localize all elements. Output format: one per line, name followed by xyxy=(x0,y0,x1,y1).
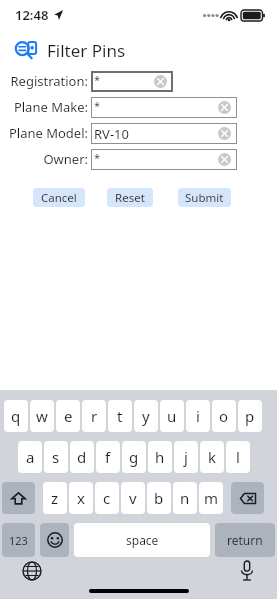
staticText: b xyxy=(154,488,164,508)
button[interactable]: q xyxy=(4,400,28,432)
staticText: v xyxy=(129,488,137,508)
staticText: RV-10 xyxy=(94,125,129,143)
button[interactable]: Clear text xyxy=(218,101,231,114)
staticText: Plane Make: xyxy=(0,98,88,116)
staticText: return xyxy=(227,532,263,548)
button[interactable]: Shift xyxy=(2,482,35,514)
button[interactable]: * xyxy=(91,71,173,92)
button[interactable]: Emoji xyxy=(40,523,69,557)
button[interactable]: o xyxy=(212,400,236,432)
button[interactable]: return xyxy=(215,523,275,557)
button[interactable]: s xyxy=(44,441,68,473)
staticText: j xyxy=(184,447,188,467)
staticText: t xyxy=(117,406,123,426)
button[interactable]: j xyxy=(174,441,198,473)
button[interactable]: b xyxy=(147,482,171,514)
staticText: h xyxy=(155,447,165,467)
staticText: space xyxy=(126,532,159,548)
button[interactable]: * xyxy=(91,149,237,170)
staticText: c xyxy=(103,488,111,508)
button[interactable]: d xyxy=(70,441,94,473)
staticText: d xyxy=(77,447,87,467)
staticText: i xyxy=(196,406,200,426)
staticText: q xyxy=(11,406,21,426)
button[interactable]: Dictate xyxy=(239,560,255,581)
staticText: a xyxy=(26,447,35,467)
staticText: * xyxy=(94,150,101,165)
button[interactable]: t xyxy=(108,400,132,432)
staticText: l xyxy=(236,447,240,467)
staticText: Cancel xyxy=(41,190,77,206)
button[interactable]: Clear text xyxy=(218,153,231,166)
staticText: z xyxy=(51,488,59,508)
staticText: y xyxy=(142,406,150,426)
staticText: Filter Pins xyxy=(47,39,126,62)
staticText: r xyxy=(91,406,98,426)
button[interactable]: y xyxy=(134,400,158,432)
button[interactable]: Submit xyxy=(178,188,231,207)
button[interactable]: c xyxy=(95,482,119,514)
staticText: p xyxy=(245,406,255,426)
button[interactable]: Cancel xyxy=(33,188,85,207)
staticText: Plane Model: xyxy=(0,124,88,142)
staticText: k xyxy=(208,447,217,467)
staticText: m xyxy=(204,488,219,508)
button[interactable]: g xyxy=(122,441,146,473)
staticText: * xyxy=(94,72,101,87)
button[interactable]: Change keyboard language xyxy=(22,561,42,581)
staticText: s xyxy=(52,447,60,467)
staticText: e xyxy=(64,406,73,426)
staticText: 123 xyxy=(9,533,28,548)
staticText: w xyxy=(36,406,48,426)
staticText: o xyxy=(219,406,229,426)
button[interactable]: Backspace xyxy=(231,482,264,514)
button[interactable]: u xyxy=(160,400,184,432)
staticText: f xyxy=(105,447,111,467)
staticText: x xyxy=(77,488,85,508)
button[interactable]: l xyxy=(226,441,250,473)
staticText: 12:48 xyxy=(15,6,49,24)
button[interactable]: x xyxy=(69,482,93,514)
button[interactable]: k xyxy=(200,441,224,473)
button[interactable]: m xyxy=(199,482,223,514)
staticText: u xyxy=(167,406,177,426)
button[interactable]: p xyxy=(238,400,262,432)
button[interactable]: w xyxy=(30,400,54,432)
button[interactable]: a xyxy=(18,441,42,473)
staticText: Owner: xyxy=(0,150,88,168)
button[interactable]: Clear text xyxy=(154,75,167,88)
staticText: Submit xyxy=(185,190,224,206)
button[interactable]: v xyxy=(121,482,145,514)
staticText: g xyxy=(129,447,139,467)
button[interactable]: 123 xyxy=(2,523,35,557)
button[interactable]: Reset xyxy=(107,188,153,207)
button[interactable]: r xyxy=(82,400,106,432)
button[interactable]: e xyxy=(56,400,80,432)
button[interactable]: f xyxy=(96,441,120,473)
button[interactable]: * xyxy=(91,97,237,118)
staticText: Reset xyxy=(115,190,145,206)
button[interactable]: space xyxy=(74,523,210,557)
button[interactable]: i xyxy=(186,400,210,432)
button[interactable]: RV-10 xyxy=(91,123,237,144)
staticText: Registration: xyxy=(0,72,88,90)
button[interactable]: Clear text xyxy=(218,127,231,140)
button[interactable]: n xyxy=(173,482,197,514)
button[interactable]: h xyxy=(148,441,172,473)
staticText: * xyxy=(94,98,101,113)
button[interactable]: z xyxy=(43,482,67,514)
staticText: n xyxy=(180,488,190,508)
